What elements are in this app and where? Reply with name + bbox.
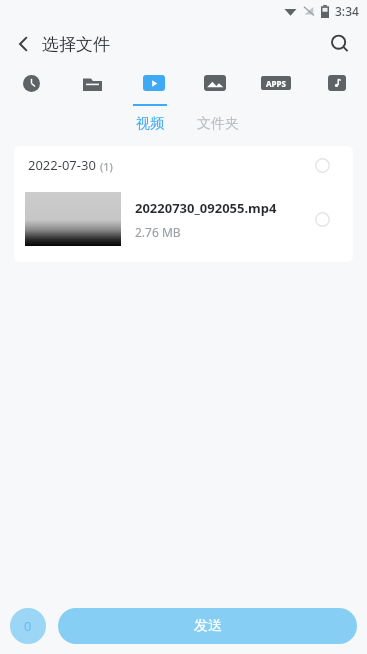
button[interactable]: Video xyxy=(123,66,184,100)
staticText: (1) xyxy=(100,159,113,174)
button[interactable]: Search xyxy=(321,25,359,63)
staticText: 3:34 xyxy=(335,3,359,19)
staticText: 0 xyxy=(24,617,32,635)
button[interactable]: 文件夹 xyxy=(186,100,250,136)
staticText: APPS xyxy=(266,78,286,89)
button[interactable]: Back xyxy=(6,26,42,62)
button[interactable]: 2022-07-30 xyxy=(14,146,353,184)
staticText: 发送 xyxy=(194,617,222,635)
button[interactable]: Select xyxy=(309,206,335,232)
button[interactable]: 20220730_092055.mp4 xyxy=(14,184,353,254)
staticText: 选择文件 xyxy=(42,34,110,55)
button[interactable]: Select xyxy=(309,152,335,178)
staticText: 2022-07-30 xyxy=(28,156,96,174)
button[interactable]: 视频 xyxy=(122,100,178,136)
button[interactable]: Recent xyxy=(0,66,62,100)
button[interactable]: Folders xyxy=(62,66,123,100)
staticText: 20220730_092055.mp4 xyxy=(135,199,277,217)
staticText: 2.76 MB xyxy=(135,224,181,240)
button[interactable]: Images xyxy=(184,66,245,100)
button[interactable]: Music xyxy=(306,66,367,100)
button[interactable]: 发送 xyxy=(58,608,357,644)
staticText: 视频 xyxy=(136,115,164,133)
staticText: 文件夹 xyxy=(197,115,239,133)
button[interactable]: Apps xyxy=(245,66,306,100)
button[interactable]: 0 xyxy=(10,608,46,644)
